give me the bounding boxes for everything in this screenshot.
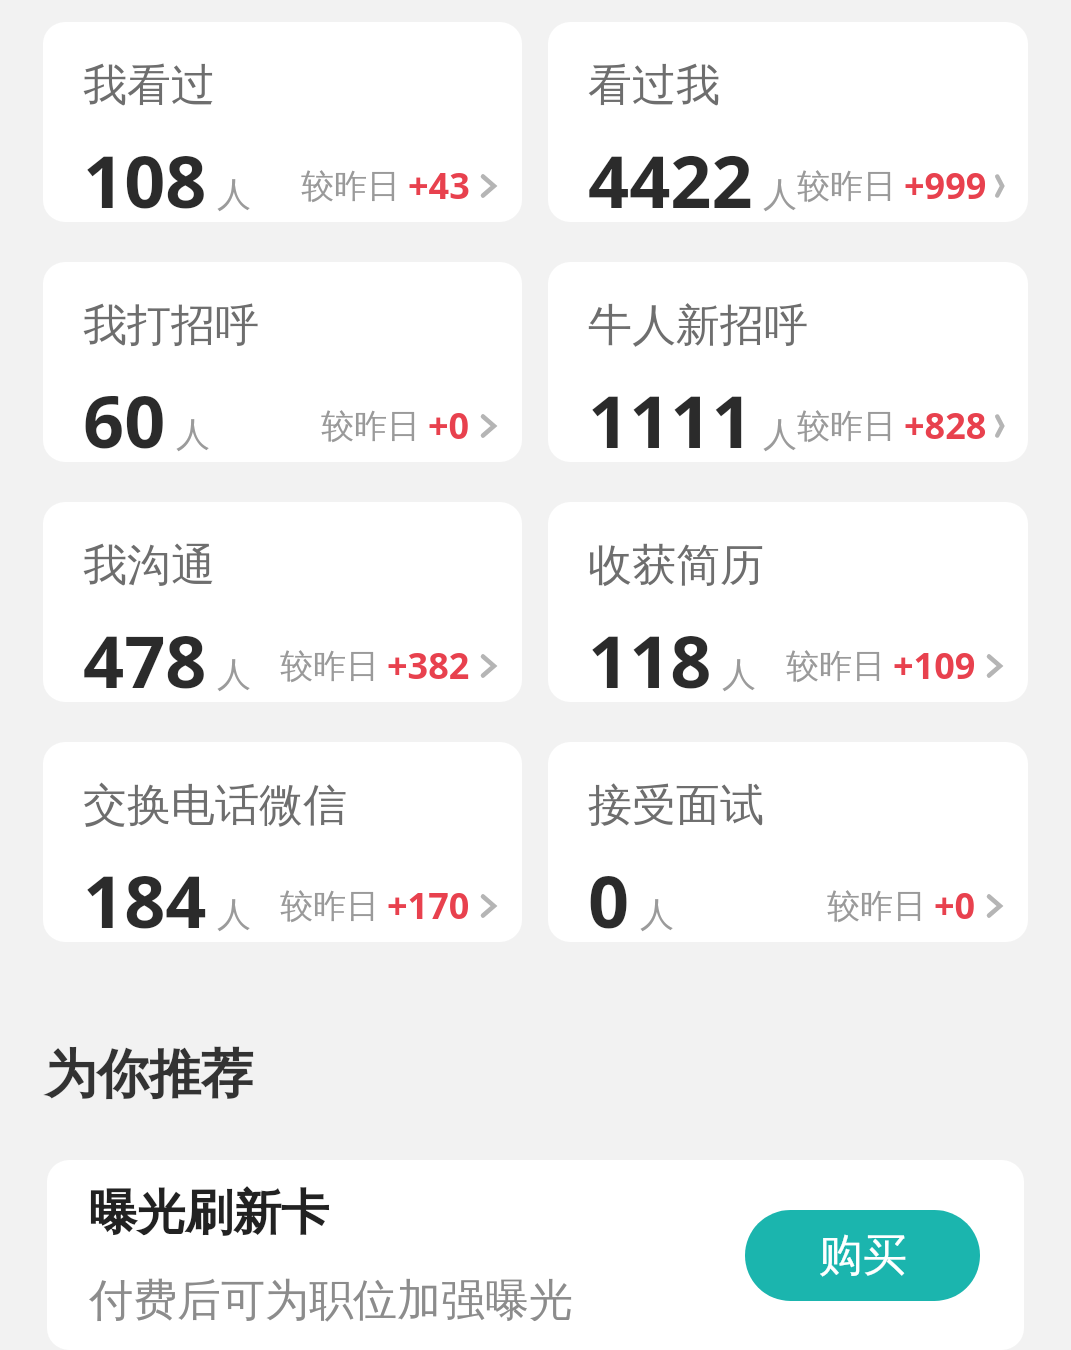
staticText: 付费后可为职位加强曝光 bbox=[89, 1273, 573, 1328]
staticText: 108 bbox=[83, 131, 207, 222]
staticText: +382 bbox=[387, 641, 470, 690]
staticText: 0 bbox=[588, 851, 630, 942]
staticText: 人 bbox=[176, 413, 210, 456]
staticText: +0 bbox=[934, 881, 976, 930]
staticText: 看过我 bbox=[588, 58, 720, 113]
staticText: 人 bbox=[217, 653, 251, 696]
staticText: 交换电话微信 bbox=[83, 778, 347, 833]
staticText: 人 bbox=[722, 653, 756, 696]
staticText: 为你推荐 bbox=[45, 1042, 253, 1108]
staticText: 人 bbox=[217, 893, 251, 936]
staticText: 较昨日 bbox=[280, 645, 379, 687]
staticText: 牛人新招呼 bbox=[588, 298, 808, 353]
button[interactable]: 我看过 bbox=[43, 22, 522, 222]
staticText: 较昨日 bbox=[301, 165, 400, 207]
button[interactable]: 我打招呼 bbox=[43, 262, 522, 462]
button[interactable]: 交换电话微信 bbox=[43, 742, 522, 942]
button[interactable]: 接受面试 bbox=[548, 742, 1028, 942]
staticText: 118 bbox=[588, 611, 712, 702]
staticText: 曝光刷新卡 bbox=[89, 1183, 329, 1243]
staticText: 人 bbox=[763, 413, 797, 456]
staticText: 184 bbox=[83, 851, 207, 942]
button[interactable]: 我沟通 bbox=[43, 502, 522, 702]
button[interactable]: 看过我 bbox=[548, 22, 1028, 222]
staticText: 我打招呼 bbox=[83, 298, 259, 353]
staticText: +43 bbox=[408, 161, 470, 210]
staticText: 4422 bbox=[588, 131, 753, 222]
staticText: 60 bbox=[83, 371, 166, 462]
staticText: 人 bbox=[763, 173, 797, 216]
staticText: 较昨日 bbox=[797, 405, 896, 447]
staticText: 接受面试 bbox=[588, 778, 764, 833]
staticText: 较昨日 bbox=[786, 645, 885, 687]
staticText: 较昨日 bbox=[280, 885, 379, 927]
staticText: +828 bbox=[904, 401, 987, 450]
staticText: +170 bbox=[387, 881, 470, 930]
staticText: +999 bbox=[904, 161, 987, 210]
staticText: 我沟通 bbox=[83, 538, 215, 593]
button[interactable]: 曝光刷新卡 bbox=[47, 1160, 1024, 1350]
staticText: 较昨日 bbox=[797, 165, 896, 207]
staticText: 我看过 bbox=[83, 58, 215, 113]
staticText: 1111 bbox=[588, 371, 753, 462]
staticText: 收获简历 bbox=[588, 538, 764, 593]
staticText: 人 bbox=[217, 173, 251, 216]
staticText: 较昨日 bbox=[827, 885, 926, 927]
staticText: 478 bbox=[83, 611, 207, 702]
staticText: +109 bbox=[893, 641, 976, 690]
button[interactable]: 购买 bbox=[745, 1210, 980, 1301]
button[interactable]: 收获简历 bbox=[548, 502, 1028, 702]
button[interactable]: 牛人新招呼 bbox=[548, 262, 1028, 462]
staticText: 购买 bbox=[819, 1228, 907, 1283]
staticText: 较昨日 bbox=[321, 405, 420, 447]
staticText: 人 bbox=[640, 893, 674, 936]
staticText: +0 bbox=[428, 401, 470, 450]
